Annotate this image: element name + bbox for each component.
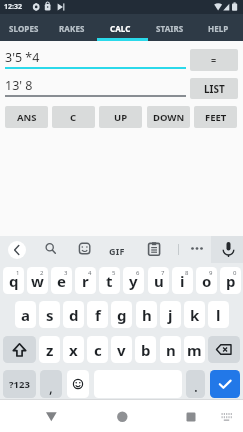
staticText: 2 — [40, 269, 44, 277]
staticText: q — [9, 271, 19, 291]
staticText: LIST — [204, 82, 225, 96]
button[interactable]: l — [208, 301, 229, 328]
button[interactable]: m — [184, 336, 205, 363]
button[interactable]: w — [27, 267, 48, 294]
staticText: 13' 8 — [5, 77, 33, 91]
button[interactable]: h — [136, 301, 157, 328]
button[interactable]: k — [184, 301, 205, 328]
staticText: ANS — [17, 111, 37, 124]
staticText: UP — [114, 111, 128, 124]
button[interactable]: GIF — [107, 244, 127, 257]
staticText: n — [166, 340, 176, 360]
button[interactable]: o — [196, 267, 217, 294]
button[interactable]: ?123 — [3, 370, 36, 398]
staticText: w — [31, 271, 44, 291]
button[interactable]: , — [40, 370, 62, 398]
button[interactable] — [220, 240, 237, 259]
button[interactable]: j — [160, 301, 181, 328]
button[interactable]: q — [3, 267, 24, 294]
staticText: v — [117, 340, 126, 360]
staticText: z — [46, 340, 54, 360]
button[interactable]: SLOPES — [0, 14, 48, 41]
button[interactable]: HELP — [194, 14, 243, 41]
button[interactable]: ANS — [5, 106, 48, 128]
staticText: CALC — [110, 23, 131, 34]
button[interactable]: v — [111, 336, 132, 363]
button[interactable]: DOWN — [147, 106, 190, 128]
staticText: 3 — [64, 269, 68, 277]
staticText: 12:32 — [4, 2, 22, 12]
button[interactable] — [219, 410, 235, 424]
button[interactable]: FEET — [194, 106, 237, 128]
button[interactable] — [43, 408, 60, 425]
staticText: o — [202, 271, 212, 291]
button[interactable]: STAIRS — [145, 14, 194, 41]
button[interactable]: = — [190, 49, 238, 71]
staticText: c — [94, 340, 102, 360]
staticText: SLOPES — [9, 23, 39, 34]
button[interactable] — [43, 241, 58, 256]
button[interactable]: . — [186, 370, 205, 398]
staticText: m — [187, 340, 202, 360]
staticText: l — [216, 305, 221, 325]
staticText: 5 — [112, 269, 116, 277]
button[interactable] — [114, 408, 131, 425]
button[interactable] — [210, 370, 240, 398]
staticText: g — [117, 305, 127, 325]
button[interactable] — [8, 241, 26, 259]
button[interactable]: f — [87, 301, 108, 328]
staticText: 9 — [209, 269, 213, 277]
staticText: k — [190, 305, 200, 325]
button[interactable] — [189, 241, 205, 256]
button[interactable] — [146, 241, 162, 257]
button[interactable]: g — [111, 301, 132, 328]
button[interactable]: c — [87, 336, 108, 363]
button[interactable]: a — [15, 301, 36, 328]
button[interactable] — [67, 370, 89, 398]
staticText: STAIRS — [156, 23, 184, 34]
staticText: e — [57, 271, 66, 291]
staticText: 3'5 *4 — [5, 49, 40, 63]
staticText: 8 — [185, 269, 189, 277]
staticText: RAKES — [59, 23, 85, 34]
staticText: h — [142, 305, 152, 325]
button[interactable]: n — [160, 336, 181, 363]
button[interactable]: LIST — [190, 78, 238, 99]
button[interactable]: p — [220, 267, 241, 294]
staticText: i — [180, 271, 185, 291]
button[interactable]: u — [148, 267, 169, 294]
button[interactable] — [208, 336, 240, 363]
staticText: 4 — [88, 269, 92, 277]
button[interactable]: s — [39, 301, 60, 328]
staticText: b — [141, 340, 151, 360]
button[interactable] — [77, 241, 92, 256]
button[interactable]: UP — [99, 106, 142, 128]
staticText: u — [154, 271, 164, 291]
staticText: x — [69, 340, 78, 360]
staticText: j — [168, 305, 173, 325]
button[interactable]: b — [135, 336, 156, 363]
button[interactable]: x — [63, 336, 84, 363]
staticText: 1 — [16, 269, 20, 277]
staticText: FEET — [205, 111, 227, 124]
button[interactable]: i — [172, 267, 193, 294]
button[interactable] — [3, 336, 36, 363]
button[interactable]: r — [75, 267, 96, 294]
button[interactable]: z — [39, 336, 60, 363]
staticText: f — [95, 305, 101, 325]
button[interactable]: e — [51, 267, 72, 294]
staticText: 7 — [161, 269, 165, 277]
staticText: DOWN — [153, 111, 185, 124]
staticText: d — [69, 305, 79, 325]
button[interactable] — [183, 408, 200, 425]
button[interactable]: y — [123, 267, 144, 294]
button[interactable]: t — [99, 267, 120, 294]
staticText: p — [226, 271, 236, 291]
button[interactable]: d — [63, 301, 84, 328]
staticText: ?123 — [9, 378, 30, 391]
button[interactable]: RAKES — [48, 14, 96, 41]
staticText: = — [211, 54, 217, 66]
button[interactable]: CALC — [96, 14, 145, 41]
button[interactable]: C — [52, 106, 95, 128]
